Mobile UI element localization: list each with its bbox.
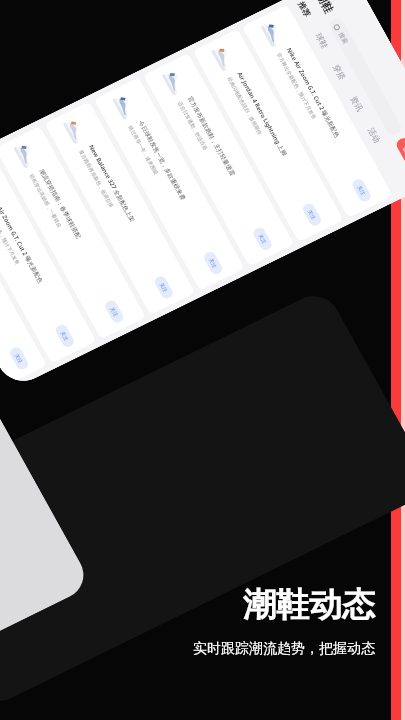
staticText: 官方释出全新配色，预计下月发售	[261, 51, 332, 121]
staticText: 搜索	[334, 29, 352, 47]
staticText: 球鞋	[310, 29, 333, 52]
staticText: 关注	[12, 351, 26, 365]
staticText: 错过再等一年，速来围观	[117, 123, 170, 176]
staticText: New Balance 327 全新配色上架	[70, 142, 154, 226]
staticText: Nike Air Zoom G.T. Cut 2 曝光新配色	[0, 190, 65, 286]
button[interactable]: 关注	[3, 343, 35, 374]
staticText: 关注	[305, 208, 319, 221]
staticText: 活动	[363, 124, 386, 146]
staticText: 复古跑鞋再添新色，低调百搭	[65, 148, 128, 210]
button[interactable]: New Balance 327 全新配色上架	[1, 91, 239, 325]
button[interactable]: 关注	[247, 223, 278, 254]
staticText: 轻松穿出高级感，一看就会	[17, 172, 75, 229]
staticText: 穿搭	[328, 61, 351, 83]
staticText: Air Jordan 4 Retro Lightning 上脚	[216, 69, 307, 159]
staticText: 关注	[157, 280, 171, 294]
staticText: 经典闪电配色回归，值得期待	[213, 75, 276, 137]
staticText: 关注	[58, 329, 72, 343]
staticText: 关注	[255, 232, 270, 246]
button[interactable]: 潮流穿搭指南：春季球鞋搭配	[0, 115, 189, 350]
button[interactable]: 今日球鞋发售一览，多款重磅来袭	[50, 67, 288, 301]
staticText: 关注	[206, 256, 220, 270]
staticText: 官方释出全新配色，预计下月发售	[0, 196, 36, 267]
button[interactable]: Air Jordan 4 Retro Lightning 上脚	[0, 166, 90, 393]
staticText: 实时跟踪潮流趋势，把握动态	[193, 640, 375, 658]
button[interactable]: Nike Air Zoom G.T. Cut 2 曝光新配色	[199, 0, 405, 228]
button[interactable]: 关注	[345, 175, 377, 206]
staticText: 今日球鞋发售一览，多款重磅来袭	[119, 118, 205, 203]
button[interactable]: 关注	[49, 320, 81, 351]
button[interactable]: 关注	[296, 199, 328, 230]
button[interactable]: 官方发布新款跑鞋，主打轻量缓震	[100, 43, 338, 277]
staticText: Air Jordan 4 Retro Lightning 上脚	[0, 213, 14, 303]
button[interactable]: 关注	[98, 296, 130, 327]
staticText: 关注	[354, 183, 369, 197]
staticText: 关注	[107, 305, 121, 319]
staticText: 潮鞋	[309, 0, 341, 18]
staticText: 潮流穿搭指南：春季球鞋搭配	[22, 166, 98, 241]
staticText: 登录	[399, 143, 405, 161]
staticText: 推荐	[293, 0, 316, 21]
staticText: Nike Air Zoom G.T. Cut 2 曝光新配色	[265, 45, 362, 141]
button[interactable]: 关注	[197, 247, 229, 279]
staticText: 潮鞋动态	[243, 584, 375, 626]
staticText: 资讯	[345, 92, 368, 115]
button[interactable]: 关注	[148, 272, 180, 303]
button[interactable]: Nike Air Zoom G.T. Cut 2 曝光新配色	[0, 140, 140, 374]
staticText: 官方发布新款跑鞋，主打轻量缓震	[168, 93, 255, 179]
staticText: 适合日常通勤，舒适百搭	[166, 99, 220, 152]
button[interactable]: Air Jordan 4 Retro Lightning 上脚	[149, 18, 387, 253]
